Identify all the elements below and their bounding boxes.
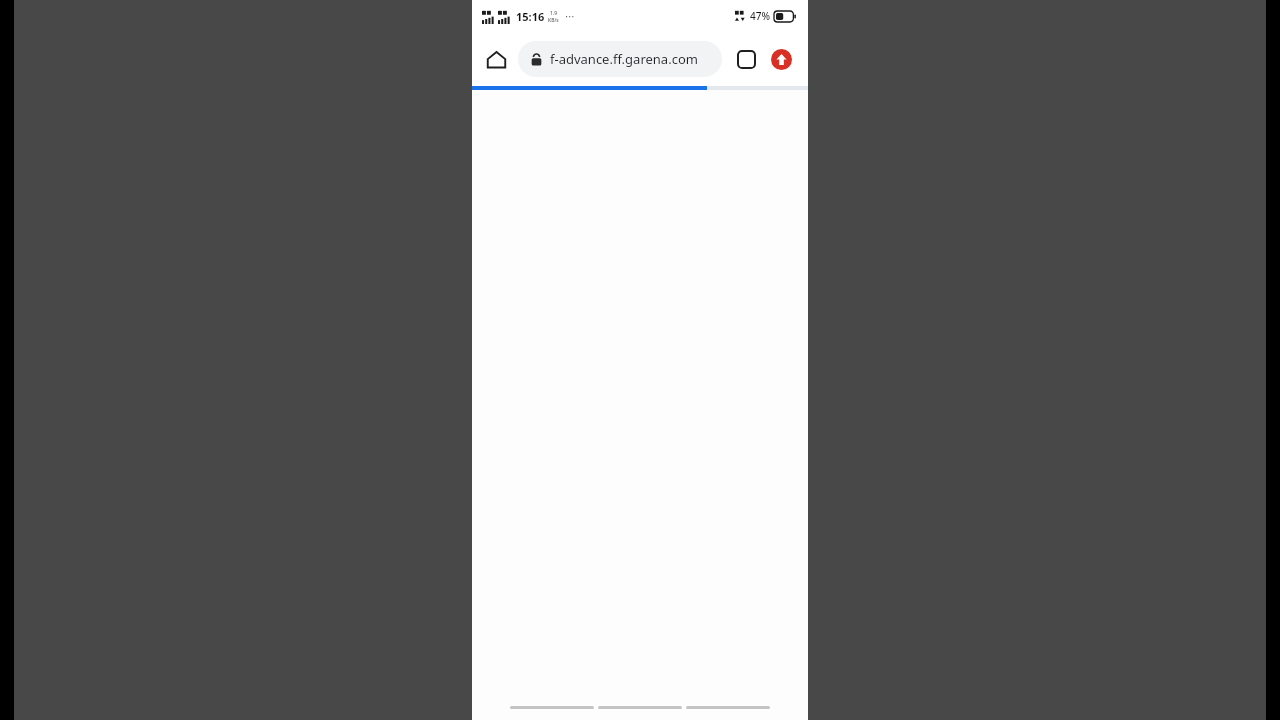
staticText: 1.9 (550, 10, 558, 17)
staticText: ⋯ (565, 11, 575, 23)
staticText: 47% (750, 9, 770, 23)
staticText: 15:16 (516, 9, 545, 24)
staticText: f-advance.ff.garena.com (550, 50, 698, 68)
staticText: KB/s (548, 17, 559, 24)
button[interactable]: Home (480, 43, 512, 75)
button[interactable]: Back (510, 706, 594, 709)
button[interactable]: Update (766, 44, 796, 74)
button[interactable]: Home (598, 706, 682, 709)
button[interactable]: Recents (686, 706, 770, 709)
button[interactable]: Tabs (730, 43, 762, 75)
button[interactable]: f-advance.ff.garena.com (518, 41, 722, 77)
